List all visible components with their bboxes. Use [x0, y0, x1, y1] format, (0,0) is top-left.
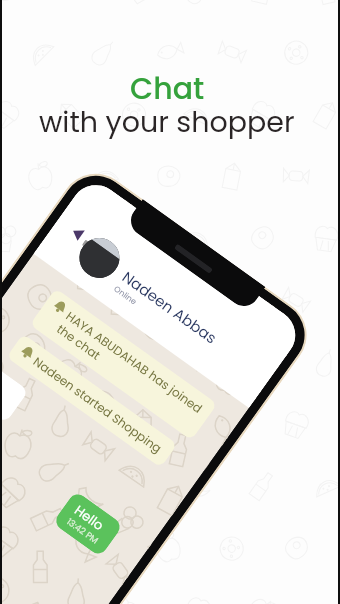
staticText: HAYA ABUDAHAB has joined the chat — [53, 307, 206, 430]
staticText: Online — [112, 283, 139, 308]
staticText: 13:42 PM — [64, 516, 101, 548]
staticText: with your shopper — [39, 102, 295, 142]
staticText: Nadeen started Shopping — [30, 353, 166, 457]
button[interactable]: Back — [65, 220, 91, 245]
staticText: Nadeen Abbas — [118, 266, 221, 349]
staticText: Chat — [130, 68, 205, 110]
staticText: Hello — [71, 501, 108, 534]
